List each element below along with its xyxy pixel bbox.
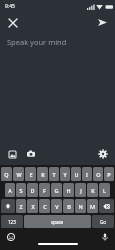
staticText: 123 — [8, 219, 16, 225]
button[interactable]: Close — [5, 15, 20, 30]
button[interactable]: Send — [95, 15, 110, 30]
staticText: D — [30, 187, 35, 194]
button[interactable]: Voice input — [98, 230, 111, 243]
button[interactable]: W — [13, 167, 24, 181]
button[interactable]: A — [5, 183, 15, 197]
staticText: Go — [100, 219, 106, 225]
button[interactable]: Z — [16, 199, 26, 213]
staticText: M — [90, 203, 95, 210]
staticText: Speak your mind — [7, 37, 67, 47]
button[interactable]: G — [51, 183, 62, 197]
staticText: R — [41, 171, 45, 178]
staticText: G — [54, 187, 59, 194]
staticText: U — [74, 171, 79, 178]
staticText: J — [80, 187, 82, 194]
staticText: N — [78, 203, 83, 210]
button[interactable]: Q — [1, 167, 12, 181]
button[interactable]: B — [63, 199, 74, 213]
staticText: S — [19, 187, 23, 194]
button[interactable]: Y — [60, 167, 70, 181]
staticText: X — [31, 203, 35, 210]
button[interactable]: N — [75, 199, 86, 213]
button[interactable]: J — [75, 183, 86, 197]
button[interactable]: L — [99, 183, 110, 197]
staticText: T — [52, 171, 56, 178]
button[interactable]: space — [24, 215, 91, 228]
button[interactable]: Go — [92, 215, 114, 228]
button[interactable]: X — [27, 199, 38, 213]
button[interactable]: U — [71, 167, 81, 181]
staticText: 9:45 — [5, 3, 15, 10]
staticText: O — [96, 171, 101, 178]
staticText: F — [43, 187, 46, 194]
button[interactable]: M — [87, 199, 98, 213]
staticText: L — [103, 187, 106, 194]
button[interactable]: C — [39, 199, 50, 213]
button[interactable]: O — [93, 167, 103, 181]
button[interactable]: V — [51, 199, 62, 213]
staticText: E — [29, 171, 33, 178]
staticText: W — [16, 171, 22, 178]
button[interactable]: R — [37, 167, 48, 181]
staticText: H — [66, 187, 71, 194]
button[interactable]: P — [104, 167, 114, 181]
staticText: B — [67, 203, 71, 210]
staticText: I — [86, 171, 88, 178]
button[interactable]: E — [25, 167, 36, 181]
button[interactable]: Settings — [96, 147, 110, 161]
button[interactable]: I — [82, 167, 92, 181]
button[interactable]: F — [39, 183, 50, 197]
button[interactable]: H — [63, 183, 74, 197]
button[interactable]: Insert image — [5, 147, 19, 161]
button[interactable]: T — [49, 167, 59, 181]
staticText: V — [55, 203, 59, 210]
staticText: K — [91, 187, 95, 194]
staticText: Q — [4, 171, 9, 178]
button[interactable]: K — [87, 183, 98, 197]
staticText: Z — [19, 203, 23, 210]
staticText: space — [51, 219, 64, 225]
button[interactable]: Camera — [24, 147, 38, 161]
staticText: P — [107, 171, 111, 178]
button[interactable]: Backspace — [99, 199, 114, 213]
button[interactable]: 123 — [1, 215, 23, 228]
button[interactable]: Shift — [1, 199, 15, 213]
staticText: Y — [63, 171, 67, 178]
button[interactable]: Emoji — [4, 230, 17, 243]
button[interactable]: D — [27, 183, 38, 197]
staticText: A — [8, 187, 12, 194]
staticText: C — [43, 203, 47, 210]
button[interactable]: S — [16, 183, 26, 197]
